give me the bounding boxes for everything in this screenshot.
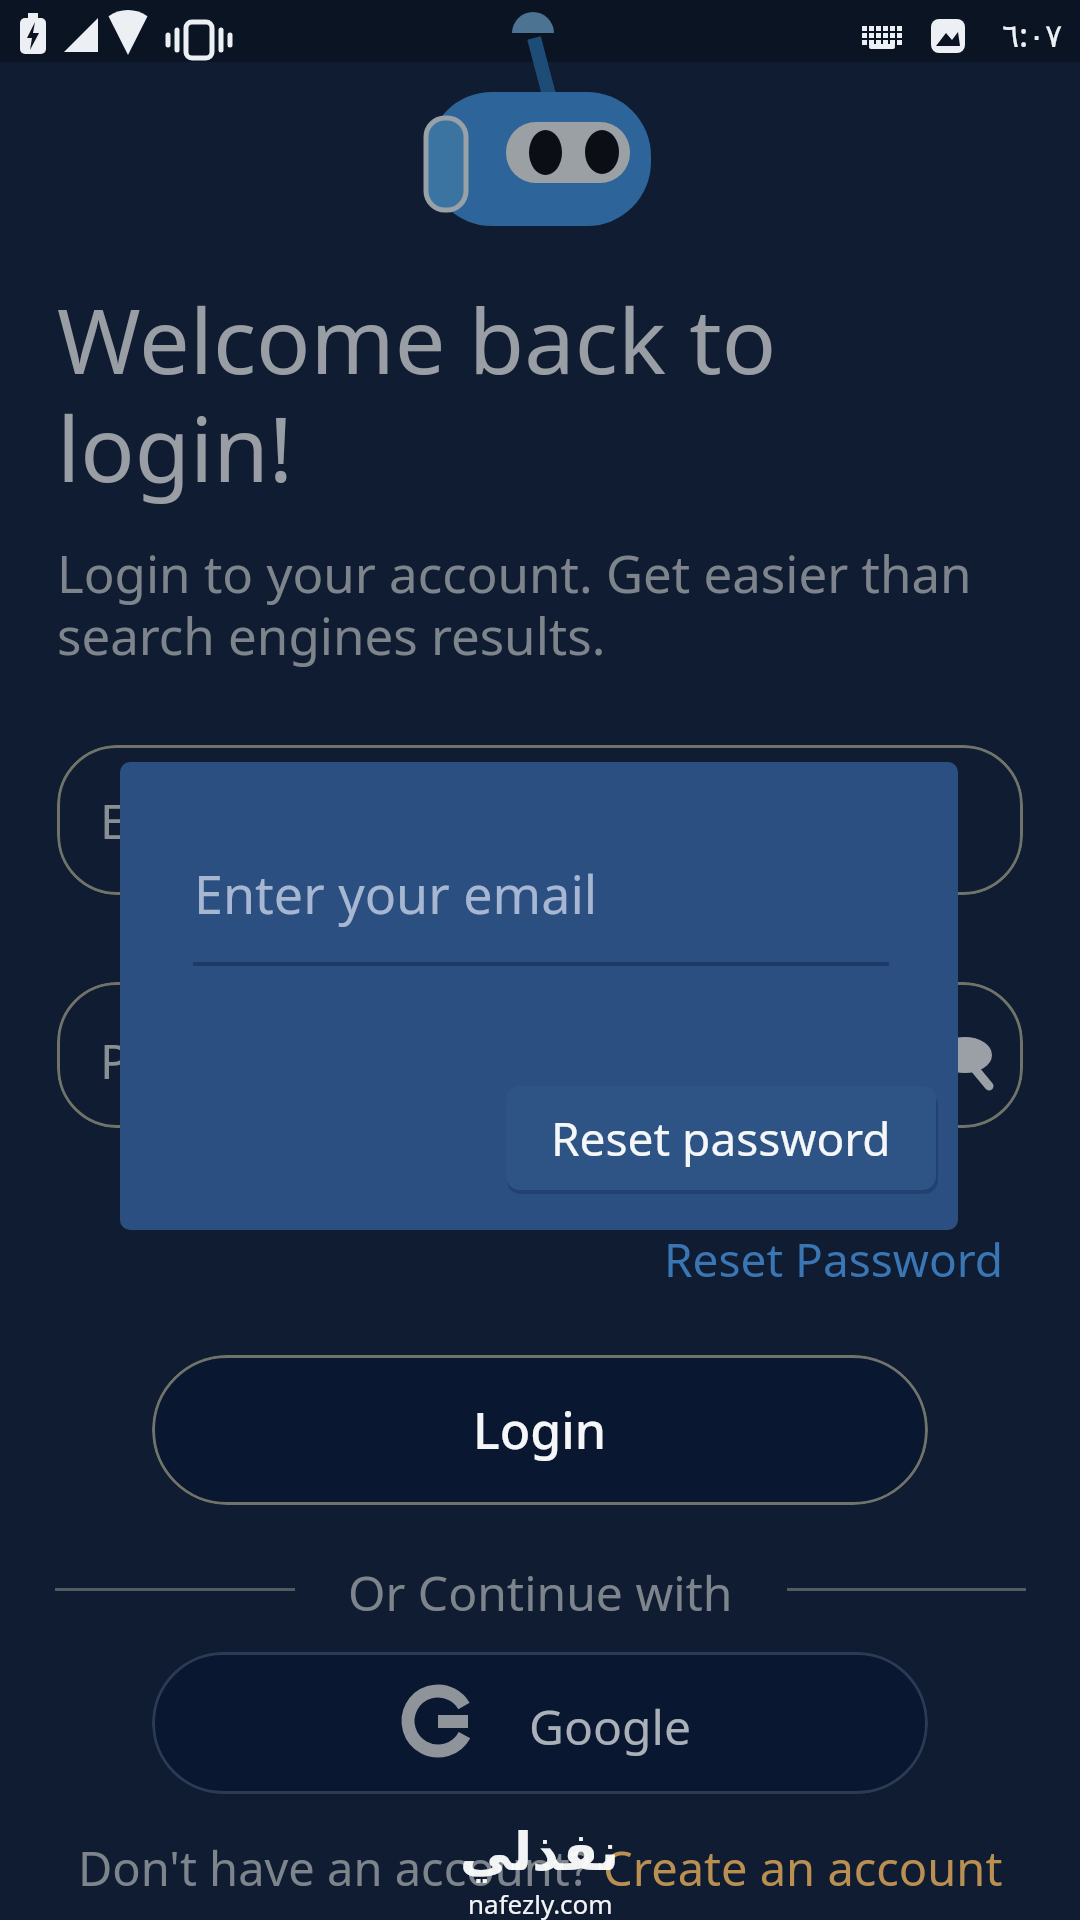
staticText: search engines results. xyxy=(57,600,606,669)
staticText: Email xyxy=(100,788,224,853)
button[interactable] xyxy=(57,745,1023,895)
staticText: Login xyxy=(473,1396,607,1464)
staticText: Reset Password xyxy=(664,1228,1004,1291)
staticText: Reset password xyxy=(551,1107,891,1170)
staticText: Or Continue with xyxy=(348,1560,733,1625)
button[interactable]: Reset Password xyxy=(664,1228,1004,1291)
staticText: Login to your account. Get easier than xyxy=(57,538,972,607)
staticText: Welcome back to xyxy=(57,278,777,401)
button[interactable] xyxy=(57,982,1023,1128)
button[interactable]: Reset password xyxy=(506,1086,936,1190)
staticText: Password xyxy=(100,1028,318,1093)
button[interactable] xyxy=(152,1652,928,1794)
staticText: ٦:٠٧ xyxy=(1002,13,1063,57)
button[interactable]: Login xyxy=(152,1355,928,1505)
staticText: Don't have an account? xyxy=(78,1836,603,1900)
staticText: Google xyxy=(529,1694,692,1759)
staticText: Enter your email xyxy=(194,858,598,929)
staticText: login! xyxy=(57,386,294,509)
staticText: نفذلي xyxy=(460,1822,620,1883)
button[interactable]: Create an account xyxy=(603,1836,1003,1900)
staticText: nafezly.com xyxy=(468,1886,613,1920)
